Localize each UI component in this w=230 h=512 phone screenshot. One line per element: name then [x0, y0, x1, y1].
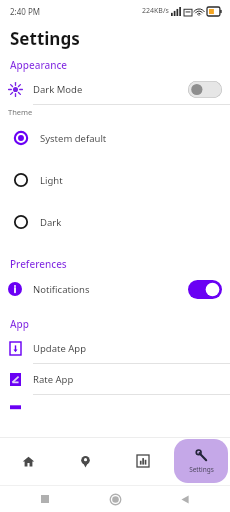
- button[interactable]: Settings: [174, 439, 228, 483]
- button[interactable]: Stats: [114, 437, 172, 485]
- staticText: Notifications: [33, 283, 90, 296]
- staticText: Theme: [8, 107, 33, 117]
- staticText: 2:40 PM: [10, 6, 41, 17]
- button[interactable]: Notifications toggle: [188, 280, 222, 299]
- button[interactable]: [0, 395, 230, 425]
- button[interactable]: Recents: [34, 488, 56, 510]
- staticText: Preferences: [10, 257, 67, 271]
- staticText: Rate App: [33, 373, 74, 386]
- staticText: System default: [40, 132, 107, 145]
- button[interactable]: Rate App: [0, 364, 230, 394]
- button[interactable]: Light: [0, 159, 230, 201]
- staticText: Settings: [10, 27, 80, 50]
- staticText: Update App: [33, 342, 86, 355]
- staticText: Dark: [40, 216, 62, 229]
- button[interactable]: Back: [174, 488, 196, 510]
- staticText: App: [10, 317, 29, 331]
- button[interactable]: Notifications: [0, 273, 230, 305]
- button[interactable]: System default: [0, 117, 230, 159]
- button[interactable]: Home: [0, 437, 57, 485]
- staticText: Dark Mode: [33, 83, 83, 96]
- staticText: Appearance: [10, 58, 68, 72]
- staticText: Settings: [189, 465, 214, 474]
- button[interactable]: Location: [57, 437, 114, 485]
- button[interactable]: Dark: [0, 201, 230, 243]
- button[interactable]: Update App: [0, 333, 230, 363]
- button[interactable]: Home: [104, 488, 126, 510]
- button[interactable]: Dark Mode toggle: [188, 81, 222, 98]
- button[interactable]: Dark Mode: [0, 74, 230, 104]
- staticText: 224KB/s: [142, 6, 169, 16]
- staticText: Light: [40, 174, 63, 187]
